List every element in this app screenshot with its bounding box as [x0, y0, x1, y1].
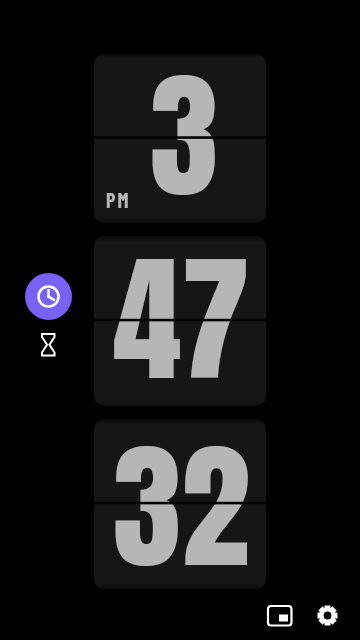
button[interactable] [25, 273, 72, 320]
staticText: 47 [113, 236, 250, 386]
button[interactable] [310, 598, 346, 634]
button[interactable] [260, 597, 300, 633]
staticText: 32 [113, 419, 250, 573]
staticText: 3 [150, 54, 219, 201]
staticText: PM [106, 188, 131, 212]
button[interactable] [34, 328, 62, 360]
